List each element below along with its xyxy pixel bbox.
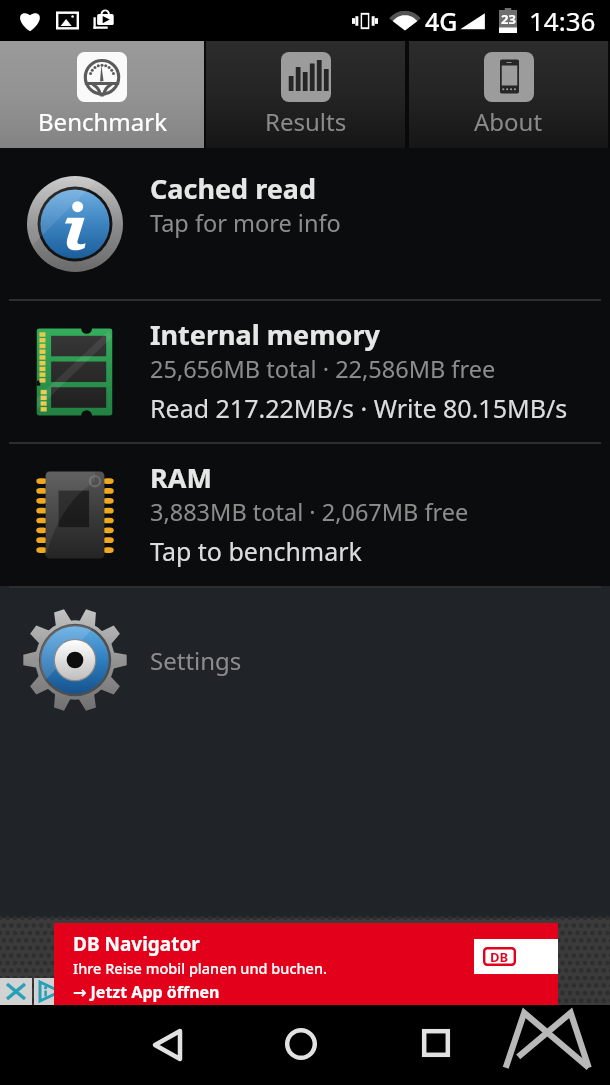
button[interactable]: Close ad (0, 978, 32, 1005)
button[interactable]: DB Navigator (54, 923, 558, 1006)
staticText: Cached read (150, 170, 317, 207)
staticText: Benchmark (38, 105, 167, 138)
button[interactable]: Benchmark (0, 41, 204, 148)
staticText: Read 217.22MB/s · Write 80.15MB/s (150, 391, 568, 425)
button[interactable]: About (407, 41, 610, 148)
staticText: 23 (501, 10, 516, 28)
staticText: 25,656MB total · 22,586MB free (150, 353, 496, 385)
staticText: Tap for more info (150, 207, 341, 239)
button[interactable]: Home (266, 1009, 336, 1079)
staticText: Results (265, 105, 347, 138)
button[interactable]: Cached read (0, 148, 610, 299)
staticText: Tap to benchmark (150, 534, 362, 568)
staticText: RAM (150, 459, 212, 496)
staticText: DB (490, 948, 509, 966)
button[interactable]: RAM (0, 444, 610, 586)
button[interactable]: Menu (504, 1012, 594, 1074)
staticText: 14:36 (529, 3, 596, 38)
staticText: 3,883MB total · 2,067MB free (150, 496, 469, 528)
staticText: 4G (425, 4, 458, 38)
button[interactable]: AdChoices (34, 978, 66, 1005)
staticText: DB Navigator (73, 931, 200, 957)
staticText: → Jetzt App öffnen (73, 981, 220, 1003)
button[interactable]: Back (132, 1010, 202, 1080)
staticText: Ihre Reise mobil planen und buchen. (73, 958, 327, 978)
button[interactable]: Recents (401, 1008, 471, 1078)
staticText: Settings (150, 644, 242, 677)
button[interactable]: Settings (0, 588, 610, 732)
button[interactable]: Results (204, 41, 407, 148)
button[interactable]: Internal memory (0, 301, 610, 442)
staticText: Internal memory (150, 316, 380, 353)
staticText: About (474, 105, 543, 138)
